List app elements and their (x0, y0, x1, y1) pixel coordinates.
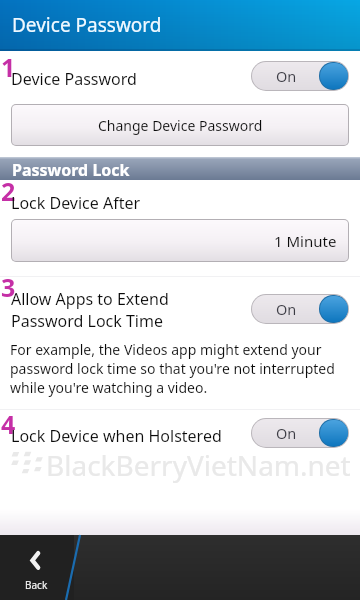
staticText: Allow Apps to Extend Password Lock Time (11, 288, 169, 332)
button[interactable]: 1 Minute (12, 220, 348, 261)
staticText: Change Device Password (98, 116, 263, 135)
staticText: On (276, 299, 297, 319)
button[interactable]: 1 (0, 57, 360, 94)
staticText: Password Lock (12, 159, 130, 181)
staticText: BlackBerryVietNam.net (46, 446, 351, 484)
button[interactable]: Allow apps to extend password lock time,… (252, 295, 348, 323)
staticText: 3 (1, 270, 16, 304)
staticText: For example, the Videos app might extend… (10, 340, 335, 397)
staticText: Back (25, 578, 48, 592)
button[interactable]: Device Password, On (252, 62, 348, 90)
staticText: Device Password (11, 68, 137, 90)
staticText: 1 (1, 50, 16, 84)
staticText: 2 (1, 174, 16, 208)
button[interactable]: Back (0, 535, 360, 600)
staticText: 1 Minute (274, 231, 337, 251)
staticText: Lock Device when Holstered (11, 425, 222, 447)
staticText: Device Password (12, 12, 162, 38)
staticText: On (276, 423, 297, 443)
staticText: Lock Device After (11, 192, 141, 214)
button[interactable]: Lock device when holstered, On (252, 419, 348, 447)
staticText: 4 (1, 407, 16, 441)
staticText: On (276, 66, 297, 86)
button[interactable]: 3 (0, 277, 360, 329)
button[interactable]: 4 (0, 414, 360, 452)
button[interactable]: 2 (0, 181, 360, 215)
button[interactable]: Change Device Password (12, 105, 348, 145)
